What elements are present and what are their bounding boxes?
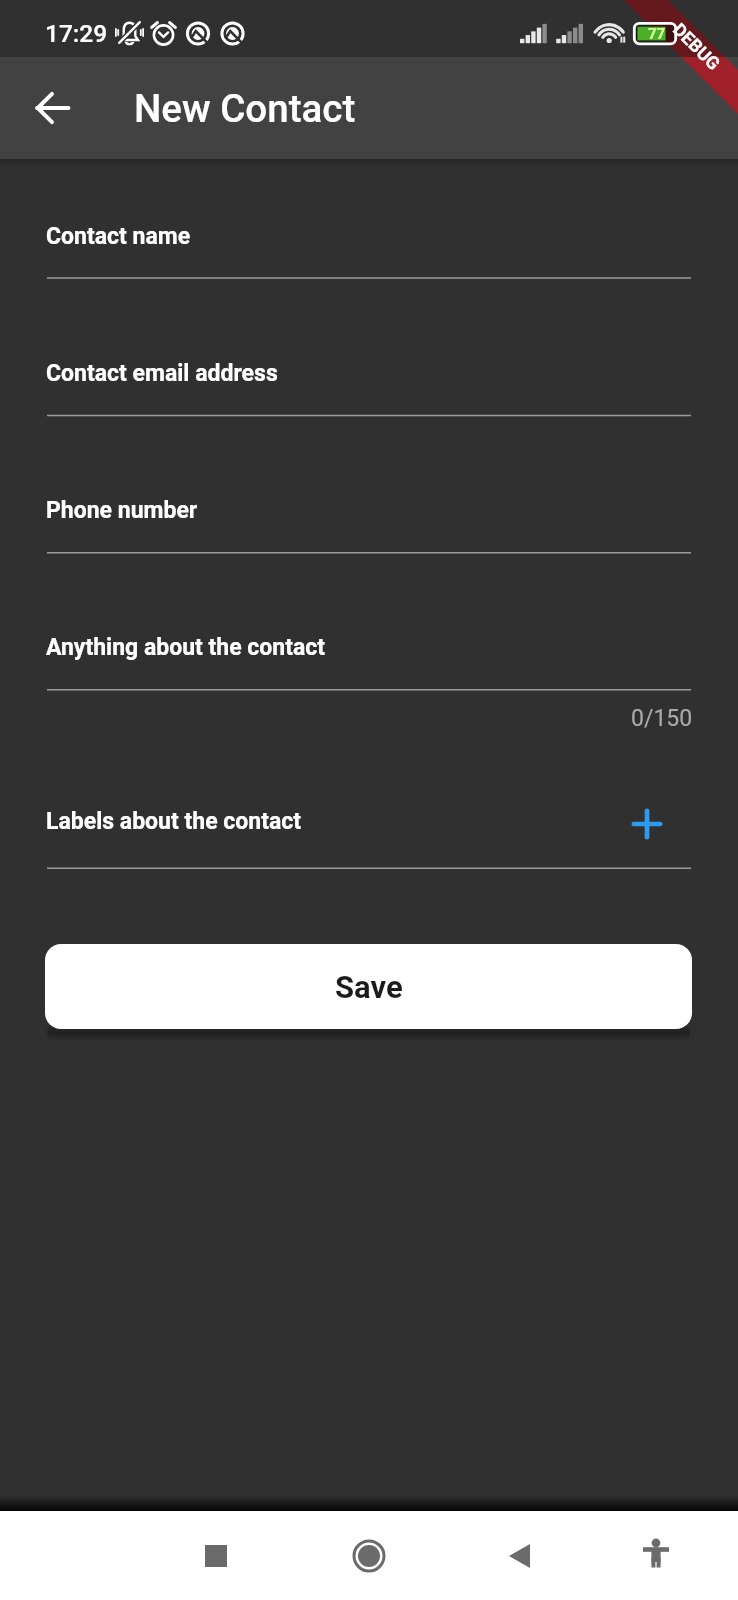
staticText: Contact email address (46, 360, 278, 387)
button[interactable]: Anything about the contact (0, 618, 738, 690)
button[interactable]: Recent apps (166, 1511, 266, 1600)
button[interactable]: Contact name (0, 206, 738, 278)
staticText: Save (335, 969, 403, 1005)
button[interactable]: Contact email address (0, 344, 738, 416)
button[interactable]: Save (45, 944, 692, 1029)
staticText: Anything about the contact (46, 634, 326, 661)
staticText: Phone number (46, 497, 198, 524)
staticText: 17:29 (45, 19, 108, 48)
button[interactable]: Back (470, 1511, 570, 1600)
staticText: Contact name (46, 223, 191, 250)
staticText: Labels about the contact (46, 808, 302, 835)
staticText: New Contact (134, 86, 356, 131)
staticText: 77 (648, 25, 666, 43)
staticText: 0/150 (631, 705, 693, 732)
button[interactable]: Home (319, 1511, 419, 1600)
button[interactable]: Add label (623, 800, 671, 848)
button[interactable]: Phone number (0, 481, 738, 553)
button[interactable]: Labels about the contact (0, 796, 738, 868)
staticText: DEBUG (669, 18, 725, 74)
button[interactable]: Back (20, 76, 84, 140)
button[interactable]: Accessibility (606, 1511, 706, 1600)
